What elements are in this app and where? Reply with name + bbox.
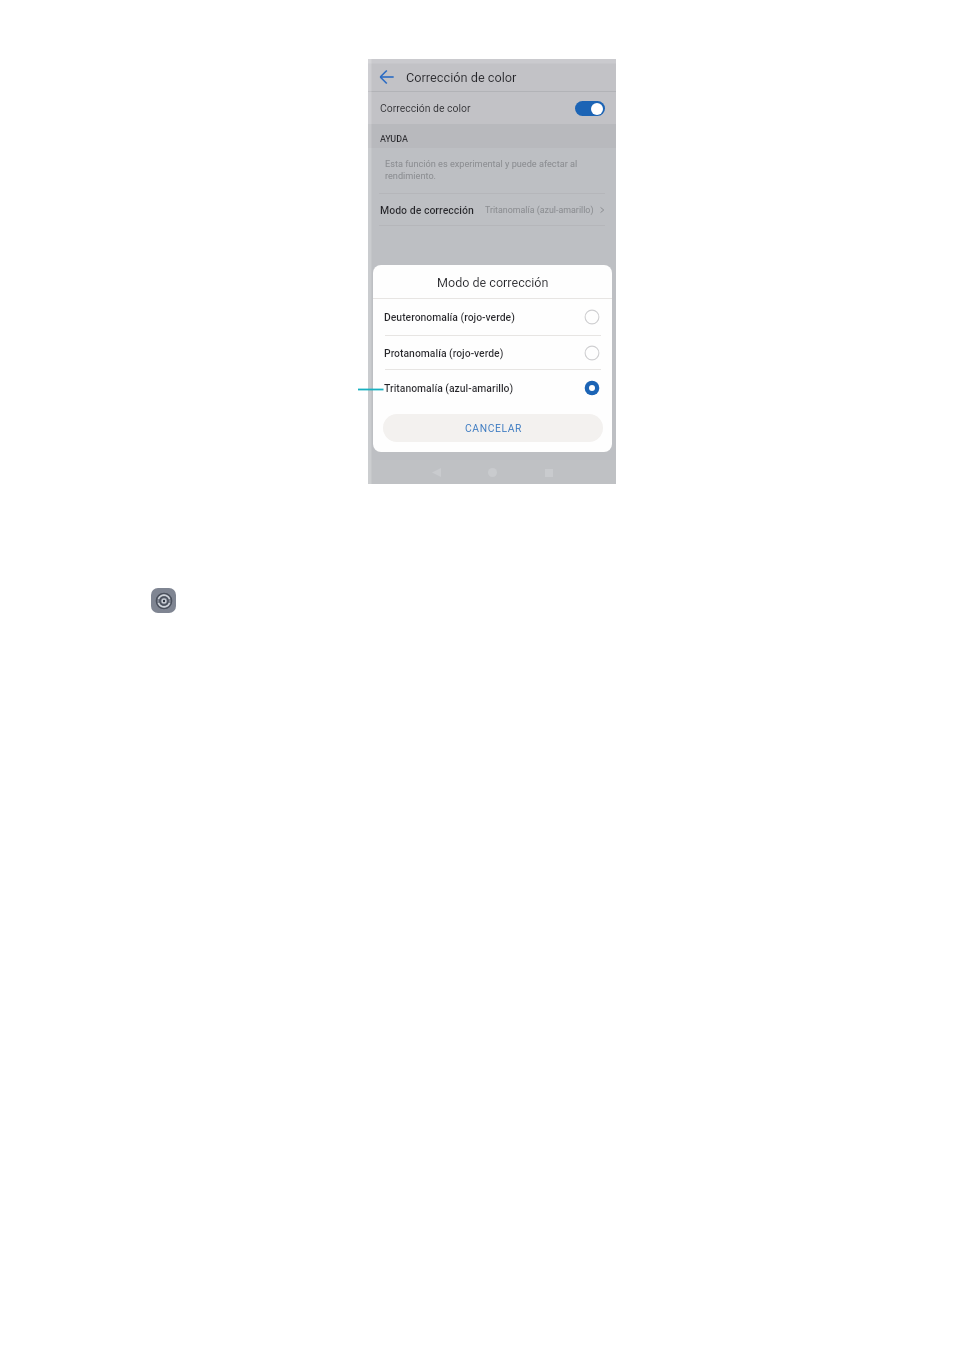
staticText: AYUDA — [380, 134, 408, 144]
button[interactable]: Deuteronomalía (rojo-verde) — [373, 299, 612, 335]
staticText: Tritanomalía (azul-amarillo) — [384, 382, 514, 394]
staticText: Modo de corrección — [437, 275, 549, 290]
button[interactable]: Protanomalía (rojo-verde) — [373, 336, 612, 369]
staticText: Corrección de color — [380, 102, 471, 114]
button[interactable]: Corrección de color activada — [575, 101, 605, 116]
button[interactable]: Corrección de color — [368, 92, 616, 124]
button[interactable]: Accesibilidad — [151, 588, 176, 613]
staticText: Esta función es experimental y puede afe… — [385, 159, 578, 182]
staticText: CANCELAR — [465, 422, 522, 434]
staticText: Modo de corrección — [380, 204, 474, 216]
staticText: Tritanomalía (azul-amarillo) — [485, 205, 594, 215]
button[interactable]: Inicio — [488, 468, 497, 477]
staticText: Corrección de color — [406, 70, 517, 85]
button[interactable]: Atrás — [376, 65, 396, 85]
staticText: Deuteronomalía (rojo-verde) — [384, 311, 515, 323]
button[interactable]: Tritanomalía (azul-amarillo) — [373, 370, 612, 406]
staticText: Protanomalía (rojo-verde) — [384, 347, 504, 359]
button[interactable]: Atrás — [432, 468, 441, 477]
button[interactable]: Modo de corrección — [368, 194, 616, 225]
button[interactable]: CANCELAR — [383, 414, 603, 442]
